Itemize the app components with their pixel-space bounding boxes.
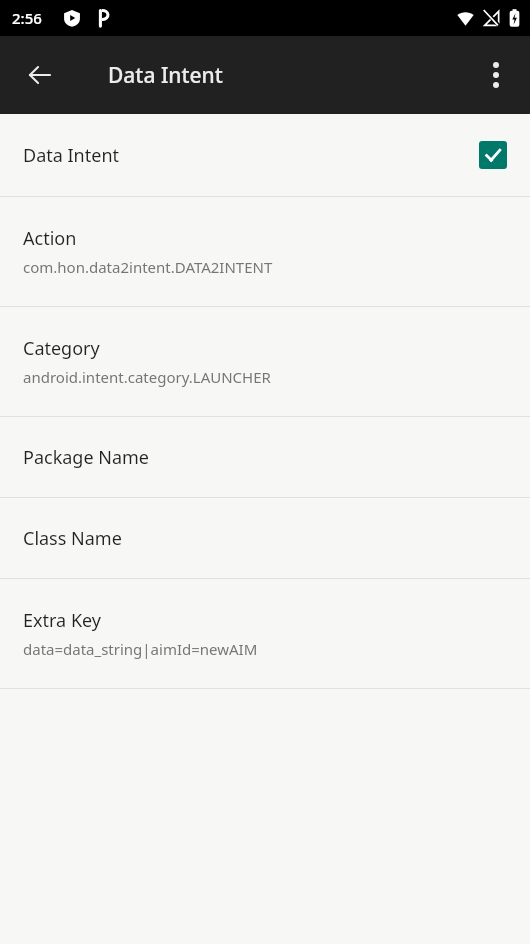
button[interactable]: Action — [0, 197, 530, 306]
staticText: Class Name — [23, 526, 122, 551]
staticText: com.hon.data2intent.DATA2INTENT — [23, 257, 273, 277]
button[interactable]: Package Name — [0, 417, 530, 497]
other: Data Intent enabled — [479, 141, 507, 169]
staticText: android.intent.category.LAUNCHER — [23, 367, 271, 387]
staticText: Data Intent — [108, 61, 223, 90]
button[interactable]: Class Name — [0, 498, 530, 578]
button[interactable]: More options — [472, 51, 520, 99]
button[interactable]: Extra Key — [0, 579, 530, 688]
staticText: Package Name — [23, 445, 149, 470]
button[interactable]: Category — [0, 307, 530, 416]
button[interactable]: Data Intent — [0, 114, 530, 196]
staticText: data=data_string|aimId=newAIM — [23, 639, 258, 659]
staticText: 2:56 — [12, 8, 42, 28]
staticText: Action — [23, 226, 77, 251]
staticText: Data Intent — [23, 143, 479, 168]
button[interactable]: Back — [16, 51, 64, 99]
staticText: Extra Key — [23, 608, 101, 633]
staticText: Category — [23, 336, 100, 361]
